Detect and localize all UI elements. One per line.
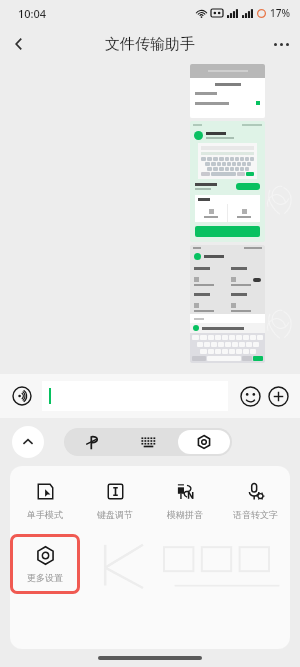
button[interactable]: Emoji bbox=[236, 382, 264, 410]
staticText: 模糊拼音 bbox=[167, 509, 203, 520]
staticText: 10:04 bbox=[18, 6, 47, 21]
button[interactable]: Voice input bbox=[8, 382, 36, 410]
staticText: 键盘调节 bbox=[97, 509, 133, 520]
button[interactable]: More bbox=[264, 382, 292, 410]
staticText: 单手模式 bbox=[27, 509, 63, 520]
button[interactable] bbox=[190, 121, 265, 242]
button[interactable]: Collapse bbox=[12, 426, 44, 458]
button[interactable]: Keyboard bbox=[120, 428, 176, 456]
staticText: 语音转文字 bbox=[233, 509, 278, 520]
button[interactable]: 更多设置 bbox=[10, 534, 80, 594]
button[interactable]: Handwriting bbox=[64, 428, 120, 456]
button[interactable]: Settings bbox=[178, 430, 230, 454]
staticText: 更多设置 bbox=[27, 572, 63, 583]
button[interactable]: More options bbox=[262, 26, 300, 62]
staticText: 文件传输助手 bbox=[105, 35, 195, 54]
button[interactable] bbox=[190, 64, 265, 118]
button[interactable]: 语音转文字 bbox=[220, 478, 290, 524]
button[interactable]: 单手模式 bbox=[10, 478, 80, 524]
staticText: 17% bbox=[270, 6, 290, 20]
button[interactable]: 模糊拼音 bbox=[150, 478, 220, 524]
button[interactable] bbox=[42, 381, 228, 411]
button[interactable] bbox=[190, 245, 265, 363]
button[interactable]: 键盘调节 bbox=[80, 478, 150, 524]
button[interactable]: Back bbox=[0, 26, 38, 62]
